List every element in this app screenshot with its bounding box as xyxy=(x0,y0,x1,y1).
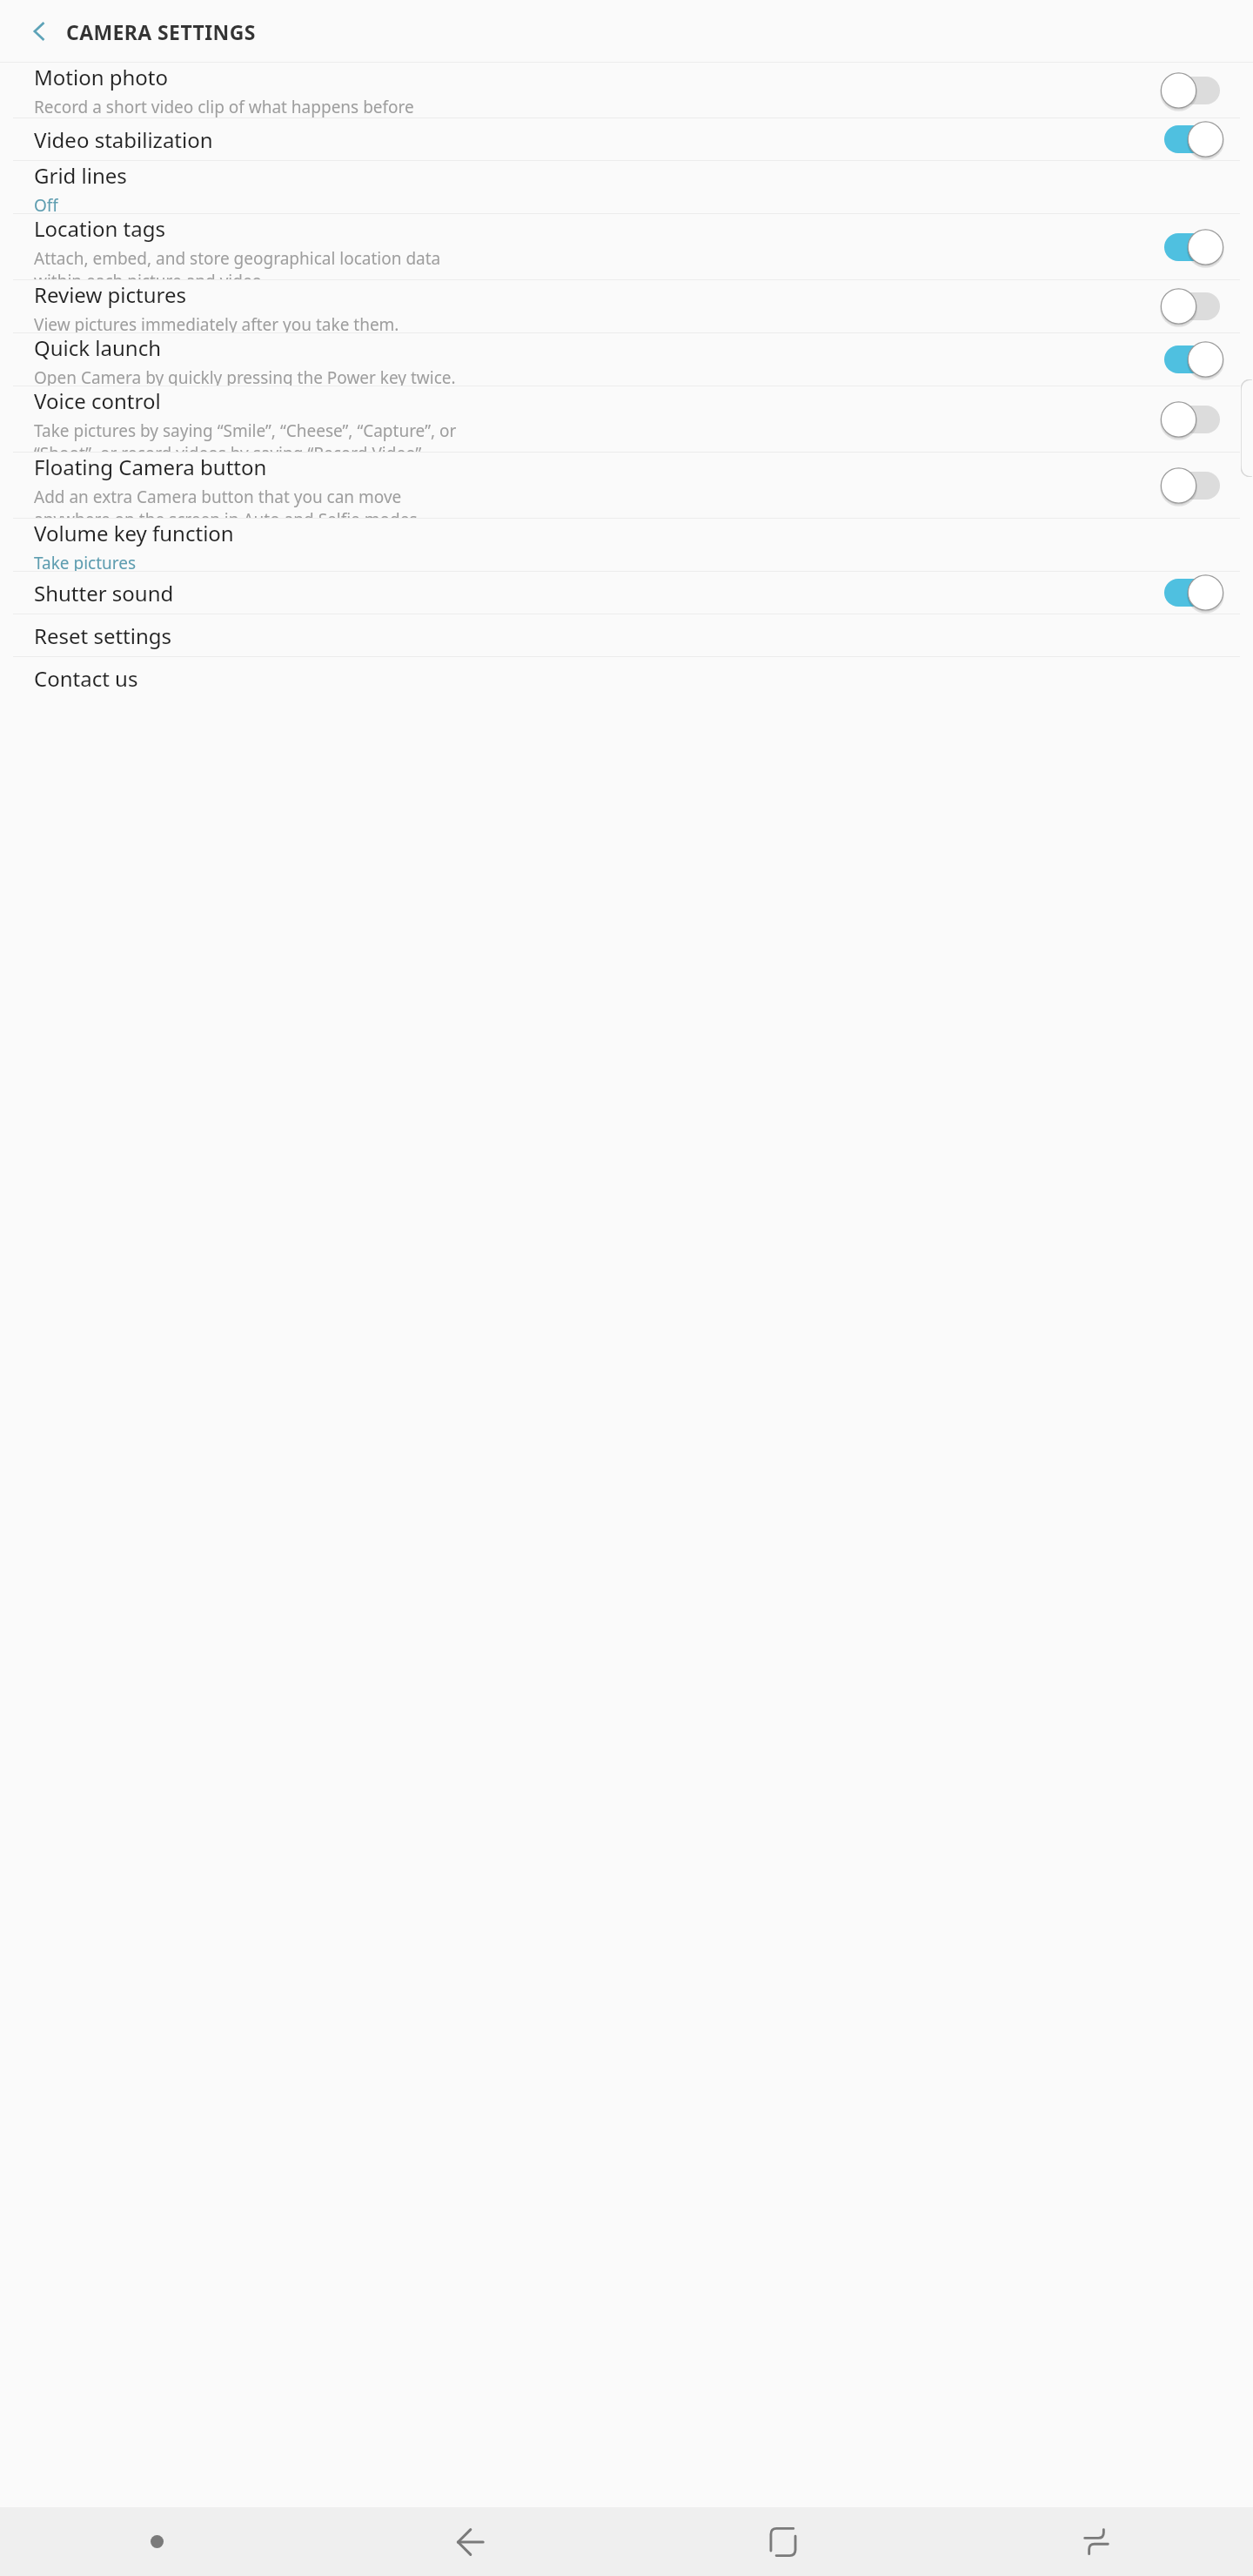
button[interactable]: Off xyxy=(1160,286,1224,326)
button[interactable]: Back xyxy=(313,2507,626,2576)
staticText: Off xyxy=(34,194,58,213)
button[interactable]: Quick launch xyxy=(0,333,1253,386)
button[interactable]: Video stabilization xyxy=(0,118,1253,160)
button[interactable]: Off xyxy=(1160,399,1224,439)
button[interactable]: Shutter sound xyxy=(0,572,1253,614)
staticText: Video stabilization xyxy=(34,125,213,154)
staticText: Attach, embed, and store geographical lo… xyxy=(34,247,441,279)
button[interactable]: Reset settings xyxy=(0,614,1253,656)
button[interactable]: Contact us xyxy=(0,657,1253,699)
button[interactable]: On xyxy=(1160,339,1224,379)
button[interactable]: On xyxy=(1160,227,1224,267)
staticText: Floating Camera button xyxy=(34,453,267,481)
staticText: View pictures immediately after you take… xyxy=(34,313,399,332)
button[interactable]: Voice control xyxy=(0,386,1253,452)
button[interactable]: Off xyxy=(1160,70,1224,111)
staticText: Location tags xyxy=(34,214,165,243)
staticText: Voice control xyxy=(34,386,161,415)
staticText: Add an extra Camera button that you can … xyxy=(34,486,422,518)
button[interactable]: Location tags xyxy=(0,214,1253,279)
button[interactable]: Off xyxy=(1160,466,1224,506)
staticText: CAMERA SETTINGS xyxy=(66,18,256,45)
button[interactable]: Motion photo xyxy=(0,63,1253,117)
button[interactable]: Home xyxy=(626,2507,940,2576)
staticText: Take pictures by saying “Smile”, “Cheese… xyxy=(34,419,457,452)
button[interactable]: Recent apps xyxy=(940,2507,1253,2576)
button[interactable]: On xyxy=(1160,119,1224,159)
button[interactable]: Grid lines xyxy=(0,161,1253,213)
button[interactable]: Back xyxy=(8,0,70,63)
staticText: Volume key function xyxy=(34,519,234,547)
button[interactable]: Floating Camera button xyxy=(0,453,1253,518)
staticText: Contact us xyxy=(34,664,138,693)
button[interactable]: On xyxy=(1160,573,1224,613)
staticText: Shutter sound xyxy=(34,579,174,607)
button[interactable]: Volume key function xyxy=(0,519,1253,571)
staticText: Record a short video clip of what happen… xyxy=(34,96,414,117)
staticText: Quick launch xyxy=(34,333,162,362)
staticText: Open Camera by quickly pressing the Powe… xyxy=(34,366,456,386)
staticText: Grid lines xyxy=(34,161,127,190)
staticText: Take pictures xyxy=(34,552,137,571)
staticText: Review pictures xyxy=(34,280,186,309)
staticText: Reset settings xyxy=(34,621,172,650)
button[interactable]: Review pictures xyxy=(0,280,1253,332)
button[interactable]: Menu xyxy=(0,2507,313,2576)
staticText: Motion photo xyxy=(34,63,169,91)
